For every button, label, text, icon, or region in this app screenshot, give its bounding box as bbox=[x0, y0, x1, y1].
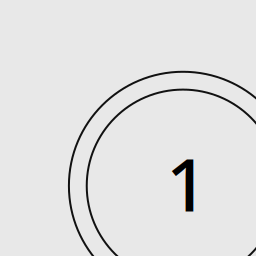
staticText: 1 bbox=[166, 134, 208, 232]
